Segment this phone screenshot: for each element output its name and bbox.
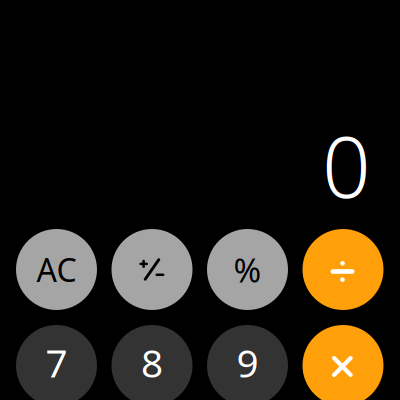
button[interactable]: 8 xyxy=(111,325,192,400)
button[interactable]: Percent xyxy=(207,229,288,310)
staticText: % xyxy=(233,247,261,292)
staticText: 0 xyxy=(322,108,371,221)
staticText: 8 xyxy=(141,337,163,388)
button[interactable]: Multiply xyxy=(302,325,383,400)
button[interactable]: Plus minus xyxy=(111,229,192,310)
staticText: 7 xyxy=(45,337,67,388)
staticText: 9 xyxy=(236,337,258,388)
button[interactable]: 9 xyxy=(207,325,288,400)
button[interactable]: All clear xyxy=(16,229,97,310)
button[interactable]: 7 xyxy=(16,325,97,400)
button[interactable]: Divide xyxy=(302,229,383,310)
staticText: AC xyxy=(36,248,76,291)
